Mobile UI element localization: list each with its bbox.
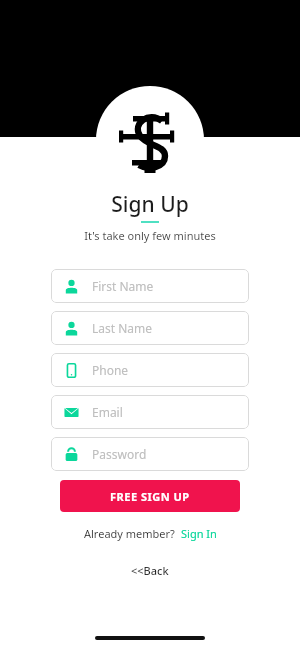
other: Phone: [64, 363, 79, 378]
button[interactable]: Email: [51, 395, 249, 429]
staticText: Sign Up: [111, 190, 189, 219]
button[interactable]: Sign In: [181, 526, 217, 541]
other: Email: [64, 405, 79, 420]
button[interactable]: Person: [51, 269, 249, 303]
staticText: Sign In: [181, 526, 217, 541]
other: Password: [64, 447, 79, 462]
staticText: Email: [92, 404, 123, 420]
button[interactable]: FREE SIGN UP: [60, 480, 240, 512]
button[interactable]: Person: [51, 311, 249, 345]
other: Person: [64, 321, 79, 336]
button[interactable]: Phone: [51, 353, 249, 387]
staticText: Phone: [92, 362, 129, 378]
staticText: It's take only few minutes: [84, 228, 216, 243]
button[interactable]: <<Back: [131, 563, 169, 578]
other: Person: [64, 279, 79, 294]
staticText: First Name: [92, 278, 154, 294]
staticText: <<Back: [131, 563, 169, 578]
button[interactable]: Password: [51, 437, 249, 471]
staticText: Already member?: [84, 526, 175, 541]
staticText: Last Name: [92, 320, 153, 336]
staticText: FREE SIGN UP: [110, 489, 190, 504]
staticText: Password: [92, 446, 147, 462]
